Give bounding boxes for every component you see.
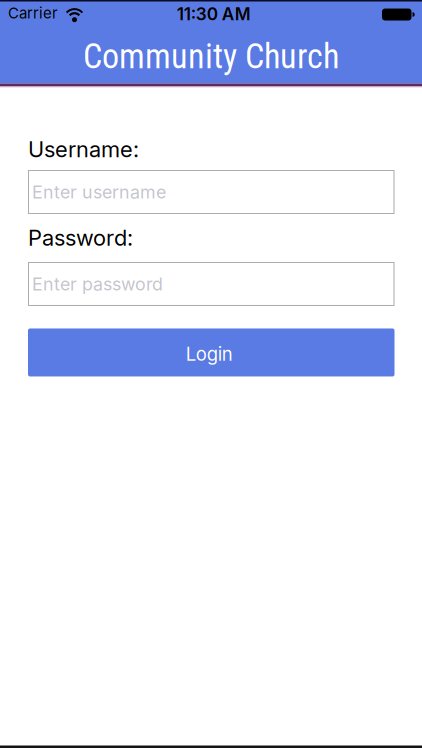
button[interactable]: Login	[28, 328, 394, 376]
button[interactable]: Enter username	[28, 170, 394, 214]
staticText: 11:30 AM	[177, 4, 251, 24]
staticText: Enter password	[32, 273, 163, 295]
staticText: Login	[186, 343, 233, 365]
staticText: Enter username	[32, 181, 166, 203]
staticText: Carrier	[8, 4, 58, 22]
button[interactable]: Enter password	[28, 262, 394, 306]
staticText: Password:	[28, 224, 133, 251]
staticText: Username:	[28, 136, 139, 162]
staticText: Community Church	[83, 36, 339, 76]
